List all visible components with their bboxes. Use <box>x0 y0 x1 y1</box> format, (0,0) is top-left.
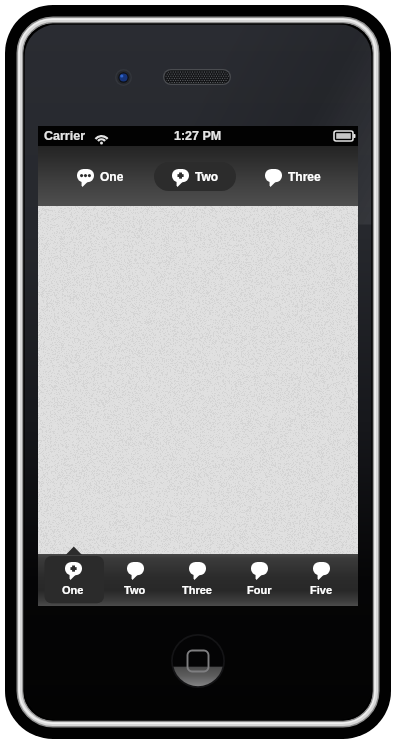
button[interactable]: Three <box>166 554 228 606</box>
staticText: Three <box>288 170 321 183</box>
staticText: One <box>62 584 84 596</box>
button[interactable]: One <box>42 554 104 606</box>
button[interactable]: Five <box>290 554 352 606</box>
button[interactable]: Four <box>228 554 290 606</box>
staticText: 1:27 PM <box>174 129 222 143</box>
button[interactable]: One <box>68 162 132 191</box>
staticText: Two <box>124 584 146 596</box>
button[interactable]: Three <box>257 162 329 191</box>
staticText: Four <box>247 584 272 596</box>
button[interactable]: Two <box>154 162 236 191</box>
staticText: Carrier <box>44 129 85 143</box>
staticText: Five <box>310 584 333 596</box>
staticText: Three <box>182 584 212 596</box>
staticText: One <box>100 170 124 183</box>
button[interactable]: Two <box>104 554 166 606</box>
staticText: Two <box>195 170 219 183</box>
